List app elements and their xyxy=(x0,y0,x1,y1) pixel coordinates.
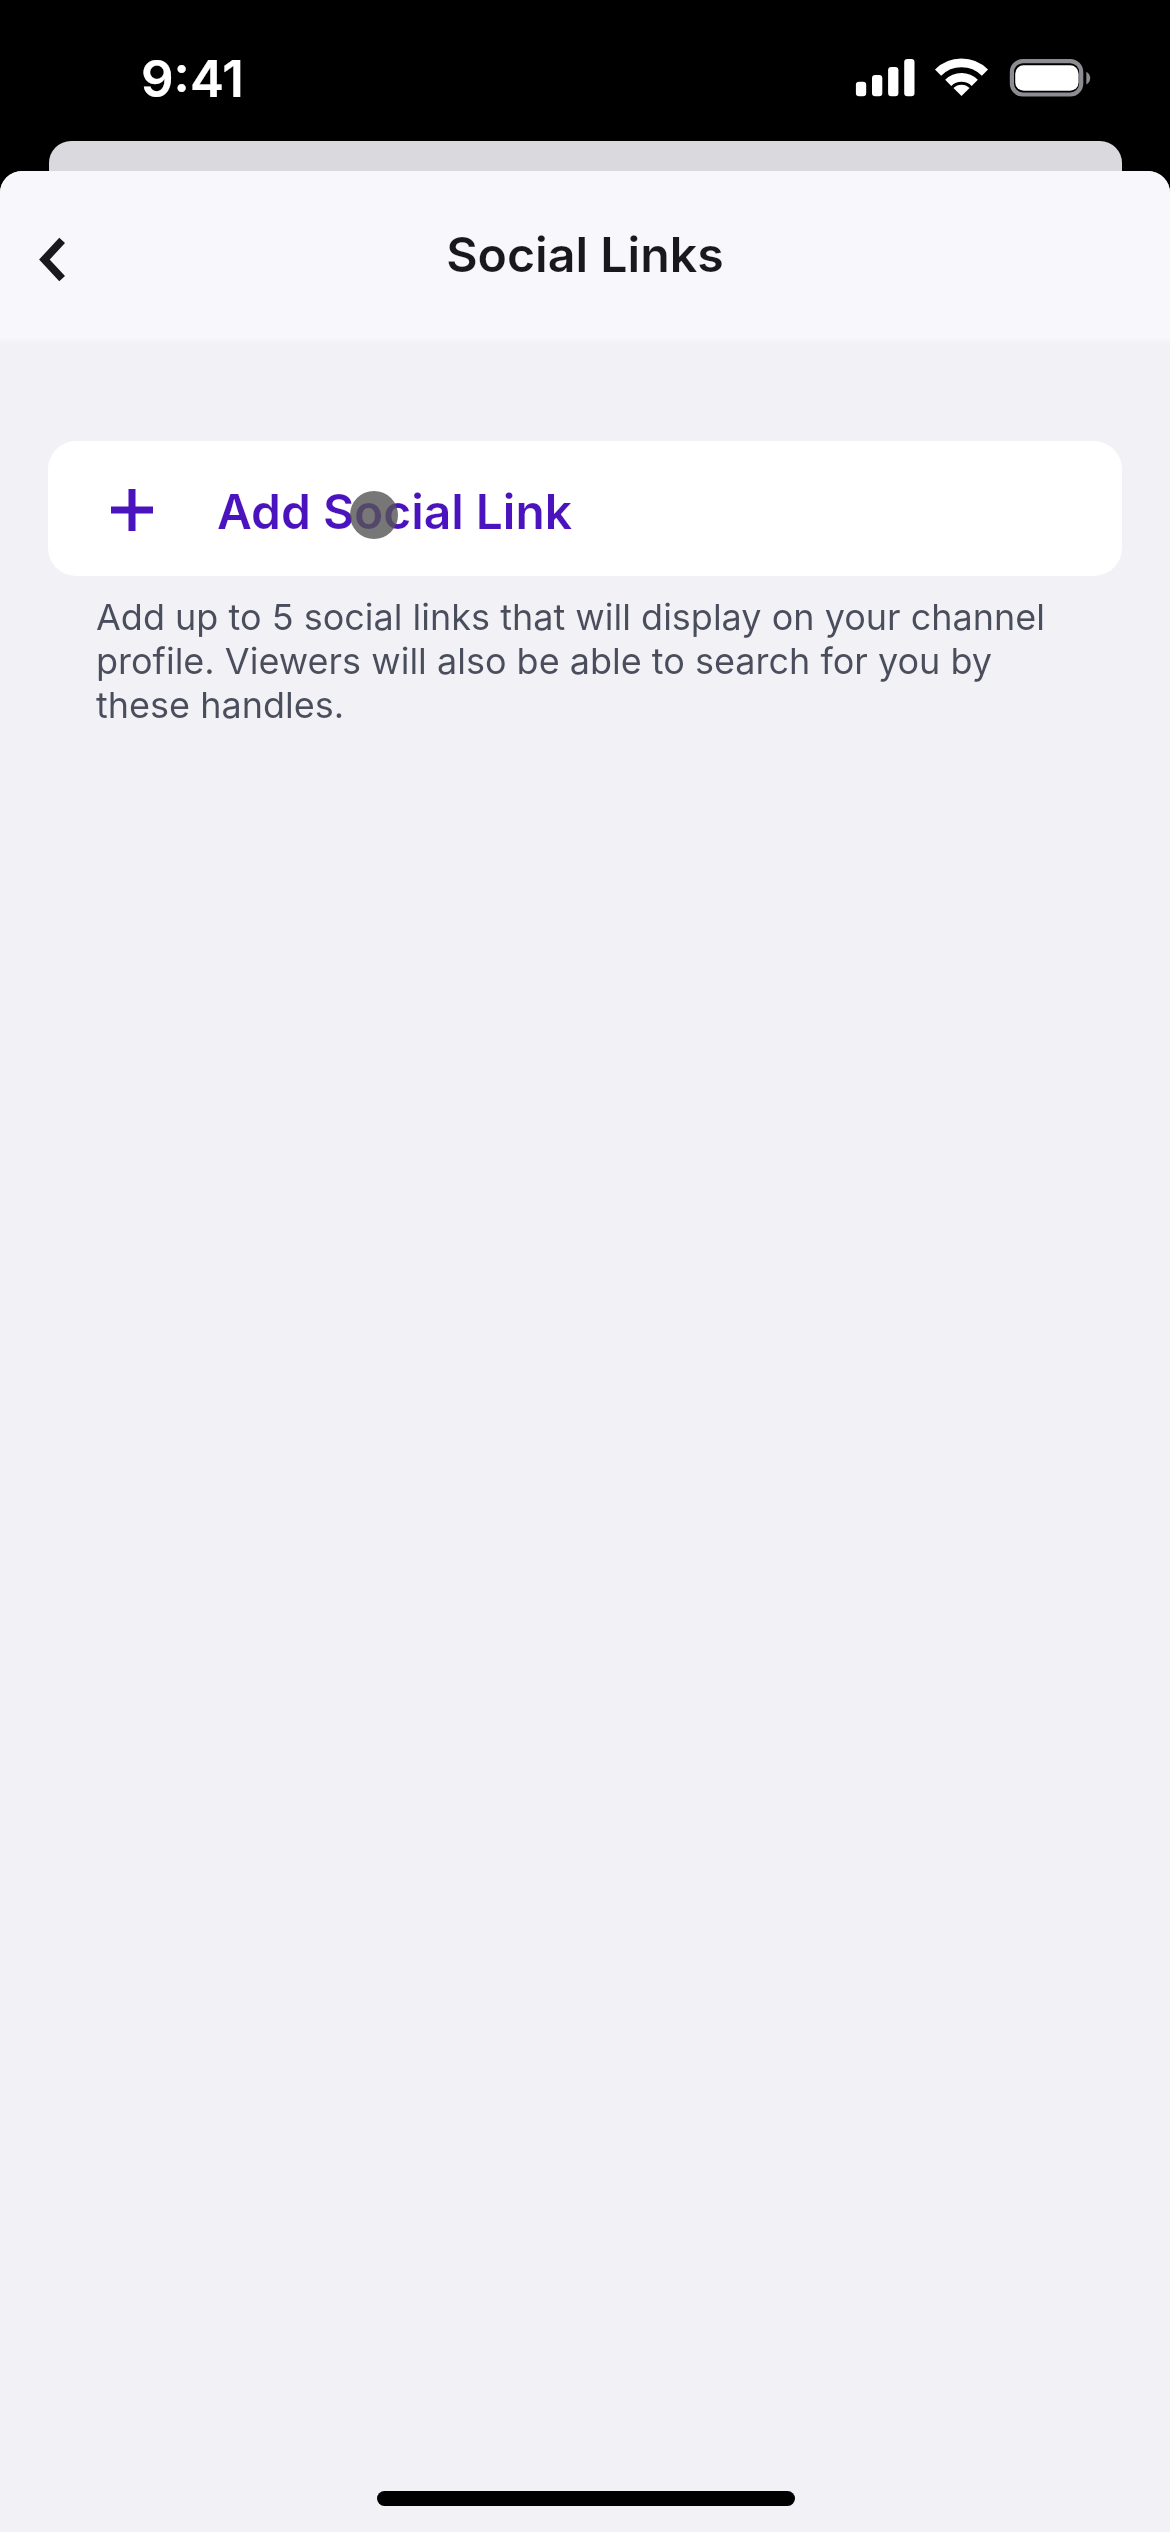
staticText: Add Social Link xyxy=(217,481,572,541)
staticText: Add up to 5 social links that will displ… xyxy=(96,595,1076,727)
button[interactable]: Add Social Link xyxy=(48,441,1122,576)
button[interactable]: Back xyxy=(2,205,102,315)
staticText: Social Links xyxy=(0,224,1170,284)
staticText: 9:41 xyxy=(141,49,244,109)
